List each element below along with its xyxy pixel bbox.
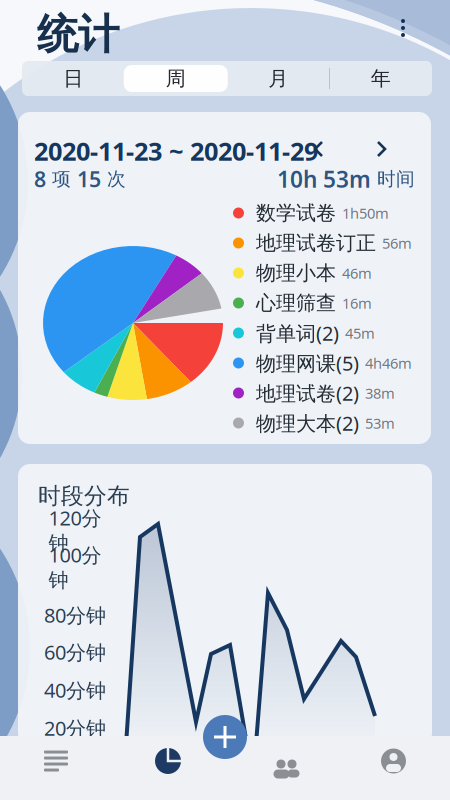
button[interactable]: More options (383, 8, 423, 48)
staticText: 地理试卷(2) (256, 380, 359, 406)
button[interactable]: Add (203, 715, 247, 759)
button[interactable]: 周 (124, 61, 227, 96)
staticText: 日 (63, 66, 83, 91)
staticText: 120分钟 (48, 504, 101, 555)
staticText: 45m (345, 323, 375, 343)
staticText: 46m (342, 263, 372, 283)
staticText: 60分钟 (44, 639, 106, 665)
staticText: 周 (166, 66, 186, 91)
button[interactable]: Friends (224, 736, 337, 786)
staticText: 物理大本(2) (256, 410, 359, 436)
staticText: 56m (382, 233, 412, 253)
staticText: 1h50m (342, 203, 389, 223)
staticText: 时间 (371, 167, 415, 190)
staticText: 年 (371, 66, 391, 91)
staticText: 38m (365, 383, 395, 403)
button[interactable]: Profile (337, 736, 450, 786)
staticText: 时段分布 (38, 482, 130, 510)
staticText: 物理网课(5) (256, 350, 359, 376)
staticText: 15 (77, 165, 101, 193)
button[interactable]: 日 (22, 61, 124, 96)
button[interactable]: Next week (364, 132, 398, 166)
staticText: 地理试卷订正 (256, 231, 376, 255)
staticText: 数学试卷 (256, 201, 336, 225)
button[interactable]: List (0, 736, 112, 786)
staticText: 20分钟 (44, 715, 106, 741)
staticText: 物理小本 (256, 261, 336, 285)
staticText: 53m (365, 413, 395, 433)
staticText: 100分钟 (48, 541, 101, 592)
button[interactable]: Previous week (302, 132, 336, 166)
button[interactable]: 月 (227, 61, 329, 96)
staticText: 背单词(2) (256, 320, 339, 346)
staticText: 次 (101, 167, 126, 190)
staticText: 项 (46, 167, 77, 190)
staticText: 月 (268, 66, 288, 91)
staticText: 心理筛查 (256, 291, 336, 315)
staticText: 16m (342, 293, 372, 313)
staticText: 统计 (37, 9, 119, 60)
staticText: 80分钟 (44, 602, 106, 628)
button[interactable]: Statistics (112, 736, 224, 786)
staticText: 10h 53m (277, 164, 371, 194)
staticText: 2020-11-23 ~ 2020-11-29 (34, 134, 318, 168)
button[interactable]: 年 (329, 61, 432, 96)
staticText: 4h46m (365, 353, 412, 373)
staticText: 40分钟 (44, 677, 106, 703)
staticText: 8 (34, 165, 46, 193)
